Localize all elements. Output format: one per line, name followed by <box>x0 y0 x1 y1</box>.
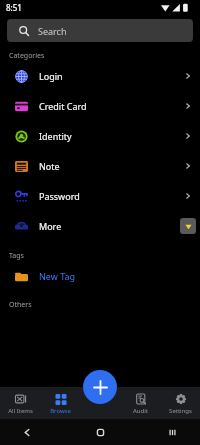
staticText: Note <box>39 160 60 172</box>
button[interactable]: Note <box>0 151 200 181</box>
staticText: Identity <box>39 130 72 142</box>
button[interactable]: Add <box>83 370 117 404</box>
staticText: Login <box>39 70 63 82</box>
button[interactable]: Identity <box>0 121 200 151</box>
staticText: All Items <box>8 407 33 415</box>
button[interactable]: New Tag <box>0 261 200 291</box>
button[interactable]: Audit <box>120 387 160 419</box>
button[interactable]: Credit Card <box>0 91 200 121</box>
staticText: 8:51 <box>6 2 22 13</box>
button[interactable]: All Items <box>0 387 40 419</box>
button[interactable]: Login <box>0 61 200 91</box>
button[interactable]: Search <box>7 19 193 42</box>
staticText: Audit <box>133 407 148 415</box>
staticText: Credit Card <box>39 100 87 112</box>
button[interactable]: Browse <box>40 387 80 419</box>
button[interactable]: Expand <box>180 218 196 234</box>
staticText: Categories <box>9 51 45 61</box>
staticText: Others <box>9 300 32 310</box>
staticText: More <box>39 220 62 232</box>
staticText: New Tag <box>39 270 76 282</box>
staticText: Password <box>39 190 80 202</box>
button[interactable]: Password <box>0 181 200 211</box>
staticText: Search <box>38 25 67 37</box>
button[interactable]: More <box>0 211 200 241</box>
staticText: Tags <box>9 251 24 261</box>
button[interactable]: Settings <box>160 387 200 419</box>
staticText: Browse <box>50 407 71 415</box>
staticText: Settings <box>169 407 192 415</box>
